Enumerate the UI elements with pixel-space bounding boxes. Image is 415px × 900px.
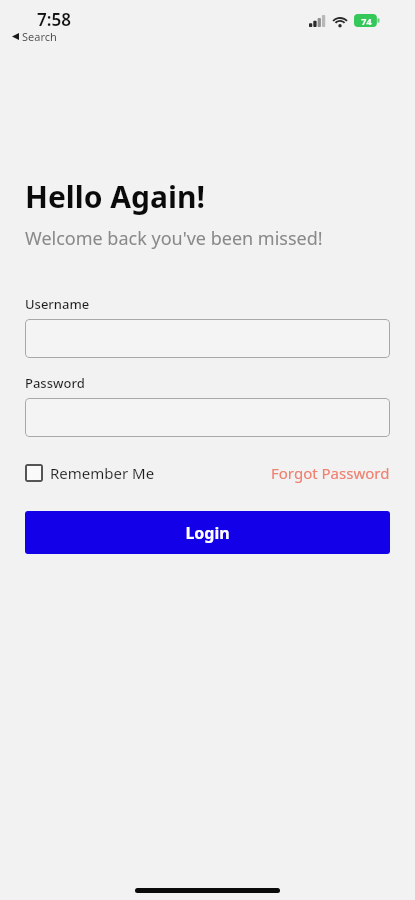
button[interactable]	[25, 319, 390, 358]
staticText: Search	[22, 29, 57, 44]
staticText: Remember Me	[50, 463, 155, 483]
button[interactable]	[25, 398, 390, 437]
button[interactable]: Forgot Password	[271, 461, 390, 485]
staticText: Hello Again!	[25, 176, 205, 217]
staticText: Login	[185, 522, 230, 544]
button[interactable]: Login	[25, 511, 390, 554]
staticText: Welcome back you've been missed!	[25, 226, 323, 251]
staticText: 74	[361, 15, 372, 27]
staticText: 7:58	[37, 8, 71, 31]
button[interactable]: Back to Search	[12, 29, 57, 44]
staticText: Password	[25, 374, 85, 392]
staticText: Username	[25, 295, 90, 313]
button[interactable]: Remember Me	[25, 461, 155, 485]
staticText: Forgot Password	[271, 463, 390, 483]
